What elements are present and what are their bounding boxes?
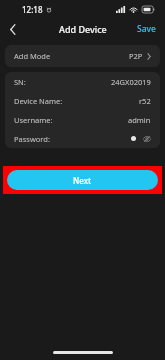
button[interactable]: SN: xyxy=(5,72,160,91)
button[interactable]: Back xyxy=(0,18,26,40)
staticText: SN: xyxy=(14,77,26,87)
staticText: Username: xyxy=(14,115,53,125)
staticText: Device Name: xyxy=(14,96,63,106)
staticText: Add Mode xyxy=(14,51,51,61)
staticText: Password: xyxy=(14,134,50,144)
staticText: Save xyxy=(137,23,156,35)
button[interactable]: Next xyxy=(7,170,158,190)
staticText: Add Device xyxy=(59,23,107,35)
button[interactable]: Password: xyxy=(5,129,160,148)
button[interactable]: Add Mode xyxy=(5,45,160,67)
staticText: P2P xyxy=(129,51,143,61)
staticText: Next xyxy=(73,175,92,186)
button[interactable]: Device Name: xyxy=(5,91,160,110)
staticText: admin xyxy=(128,115,151,125)
button[interactable]: Show password xyxy=(142,134,151,143)
staticText: r52 xyxy=(139,96,151,106)
button[interactable]: Save xyxy=(128,18,165,40)
button[interactable]: Username: xyxy=(5,110,160,129)
staticText: 24GX02019 xyxy=(111,77,151,87)
staticText: 12:18 xyxy=(22,4,43,15)
